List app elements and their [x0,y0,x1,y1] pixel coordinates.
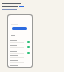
button[interactable] [8,39,32,44]
button[interactable] [8,55,32,60]
button[interactable] [8,60,32,65]
button[interactable] [8,65,32,67]
button[interactable] [12,27,27,30]
button[interactable] [8,50,32,55]
button[interactable] [8,44,32,49]
